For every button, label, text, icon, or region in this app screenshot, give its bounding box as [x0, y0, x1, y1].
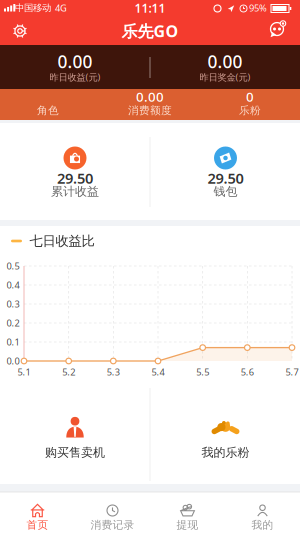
staticText: 0.3 [6, 298, 19, 310]
staticText: 我的 [251, 518, 273, 531]
button[interactable]: 消费记录 [75, 492, 150, 533]
button[interactable]: 首页 [0, 492, 75, 533]
button[interactable]: 29.50 [0, 123, 149, 220]
staticText: 5.3 [107, 366, 120, 378]
staticText: 5.1 [17, 366, 30, 378]
staticText: 消费额度 [128, 104, 172, 117]
staticText: 昨日收益(元) [49, 71, 100, 83]
button[interactable]: Messages [268, 22, 285, 38]
staticText: 4G [55, 2, 67, 14]
staticText: 消费记录 [90, 518, 134, 531]
staticText: 29.50 [57, 168, 93, 188]
staticText: 0.2 [6, 317, 19, 329]
button[interactable]: 我的乐粉 [150, 385, 299, 482]
button[interactable]: 提现 [150, 492, 225, 533]
staticText: 11:11 [134, 0, 165, 16]
staticText: 乐粉 [239, 104, 261, 117]
staticText: 中国移动 [15, 2, 51, 14]
staticText: 昨日奖金(元) [199, 71, 250, 83]
staticText: 29.50 [207, 168, 243, 188]
staticText: 我的乐粉 [201, 445, 249, 460]
staticText: 购买售卖机 [45, 445, 105, 460]
staticText: 角色 [37, 104, 59, 117]
button[interactable]: 我的 [225, 492, 300, 533]
staticText: 5.7 [285, 366, 298, 378]
staticText: 0.0 [6, 355, 19, 367]
staticText: 0 [246, 88, 254, 105]
staticText: 0.4 [6, 279, 19, 291]
staticText: 5.4 [151, 366, 164, 378]
staticText: 七日收益比 [29, 233, 94, 249]
staticText: 提现 [176, 518, 198, 531]
staticText: 乐先GO [121, 20, 178, 42]
staticText: 0.00 [57, 50, 92, 73]
staticText: 累计收益 [51, 184, 99, 199]
staticText: 0.00 [207, 50, 242, 73]
staticText: 0.1 [6, 336, 19, 348]
button[interactable]: 购买售卖机 [0, 385, 149, 482]
staticText: 5.2 [62, 366, 75, 378]
button[interactable]: 29.50 [150, 123, 299, 220]
staticText: 0.00 [136, 88, 164, 105]
staticText: 5.5 [196, 366, 209, 378]
staticText: 95% [249, 2, 267, 14]
staticText: 钱包 [213, 184, 237, 199]
button[interactable]: Settings [13, 24, 27, 38]
staticText: 0.5 [6, 260, 19, 272]
staticText: 首页 [26, 518, 48, 531]
staticText: 5.6 [241, 366, 254, 378]
